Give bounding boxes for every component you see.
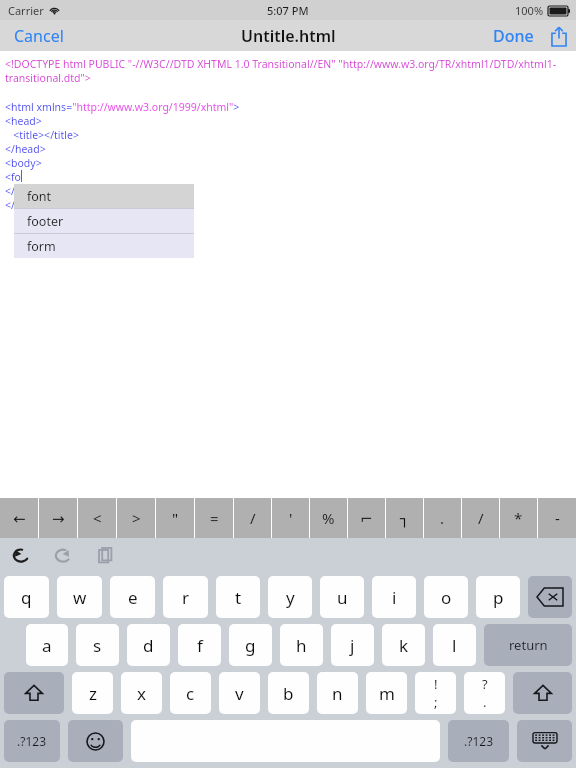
button[interactable]: Emoji (68, 720, 123, 762)
button[interactable]: g (229, 624, 272, 666)
button[interactable]: / (234, 498, 271, 538)
button[interactable]: " (156, 498, 194, 538)
staticText: d (143, 634, 154, 657)
button[interactable]: u (320, 576, 364, 618)
staticText: t (235, 586, 242, 609)
button[interactable]: Redo (50, 543, 76, 569)
staticText: .?123 (17, 733, 47, 749)
button[interactable]: r (163, 576, 208, 618)
staticText: w (73, 586, 87, 609)
button[interactable]: ! (415, 672, 456, 714)
button[interactable]: s (76, 624, 119, 666)
staticText: p (493, 586, 504, 609)
button[interactable]: / (462, 498, 499, 538)
staticText: x (137, 682, 146, 705)
staticText: b (283, 682, 294, 705)
button[interactable]: . (424, 498, 461, 538)
button[interactable]: a (26, 624, 68, 666)
staticText: h (296, 634, 307, 657)
staticText: z (89, 682, 97, 705)
button[interactable]: t (216, 576, 260, 618)
staticText: g (245, 634, 256, 657)
button[interactable]: > (117, 498, 155, 538)
staticText: 5:07 PM (267, 3, 309, 18)
staticText: q (21, 586, 32, 609)
button[interactable]: ← (0, 498, 38, 538)
button[interactable]: k (382, 624, 425, 666)
staticText: s (93, 634, 102, 657)
staticText: Untitle.html (241, 25, 336, 47)
button[interactable]: font (14, 184, 194, 208)
button[interactable]: return (484, 624, 572, 666)
button[interactable]: .?123 (448, 720, 509, 762)
button[interactable]: y (268, 576, 312, 618)
button[interactable]: z (72, 672, 113, 714)
button[interactable]: p (476, 576, 520, 618)
button[interactable]: x (121, 672, 162, 714)
button[interactable]: m (366, 672, 407, 714)
staticText: a (42, 634, 52, 657)
staticText: <!DOCTYPE html PUBLIC "-//W3C//DTD XHTML… (5, 57, 572, 86)
button[interactable]: Share (542, 20, 576, 51)
staticText: r (182, 586, 190, 609)
button[interactable]: % (310, 498, 347, 538)
button[interactable]: o (424, 576, 468, 618)
staticText: .?123 (464, 733, 494, 749)
button[interactable]: w (57, 576, 102, 618)
staticText: % (322, 508, 335, 528)
staticText: . (440, 508, 445, 528)
button[interactable]: f (178, 624, 221, 666)
button[interactable]: - (538, 498, 576, 538)
button[interactable]: q (4, 576, 49, 618)
staticText: e (128, 586, 138, 609)
button[interactable]: n (317, 672, 358, 714)
button[interactable]: < (78, 498, 116, 538)
staticText: <title></title> (5, 128, 79, 142)
button[interactable]: = (195, 498, 233, 538)
staticText: 100% (515, 3, 544, 18)
button[interactable]: footer (14, 209, 194, 233)
button[interactable]: Hide keyboard (517, 720, 572, 762)
button[interactable]: Copy (92, 543, 118, 569)
button[interactable]: d (127, 624, 170, 666)
staticText: ┐ (400, 510, 410, 527)
button[interactable]: Cancel (0, 21, 78, 51)
staticText: Carrier (8, 3, 44, 18)
button[interactable]: h (280, 624, 323, 666)
staticText: → (52, 510, 65, 527)
button[interactable]: Done (485, 21, 542, 51)
button[interactable]: l (433, 624, 476, 666)
button[interactable]: ? (464, 672, 505, 714)
staticText: Cancel (14, 25, 64, 47)
staticText: > (132, 508, 141, 528)
staticText: / (478, 508, 484, 528)
staticText: j (350, 634, 355, 657)
staticText: </head> (5, 142, 46, 156)
button[interactable]: ' (272, 498, 309, 538)
button[interactable]: i (372, 576, 416, 618)
button[interactable]: .?123 (4, 720, 60, 762)
button[interactable]: ⌐ (348, 498, 385, 538)
staticText: i (392, 586, 397, 609)
button[interactable]: ┐ (386, 498, 423, 538)
button[interactable]: Shift (4, 672, 64, 714)
staticText: <html xmlns="http://www.w3.org/1999/xhtm… (5, 100, 240, 114)
staticText: n (332, 682, 343, 705)
staticText: form (27, 238, 56, 255)
button[interactable]: Undo (8, 543, 34, 569)
button[interactable]: e (110, 576, 155, 618)
staticText: ; (434, 693, 438, 711)
button[interactable]: c (170, 672, 211, 714)
button[interactable]: Shift (513, 672, 572, 714)
button[interactable]: Backspace (528, 576, 572, 618)
button[interactable]: → (39, 498, 77, 538)
button[interactable]: j (331, 624, 374, 666)
button[interactable]: form (14, 234, 194, 258)
staticText: - (555, 508, 560, 528)
button[interactable]: v (219, 672, 260, 714)
staticText: <fo (5, 170, 21, 184)
staticText: footer (27, 213, 64, 230)
button[interactable]: * (500, 498, 537, 538)
button[interactable]: b (268, 672, 309, 714)
